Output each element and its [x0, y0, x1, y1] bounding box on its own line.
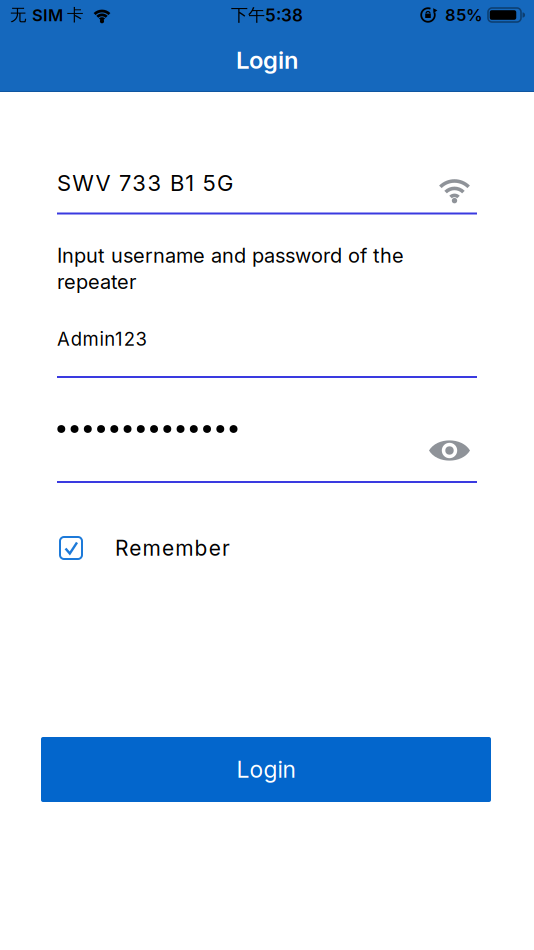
staticText: Login [236, 45, 298, 74]
staticText: 无 SIM 卡 [10, 5, 84, 25]
staticText: 下午5:38 [231, 4, 303, 26]
staticText: Remember [115, 535, 230, 561]
button[interactable]: Admin123 [57, 322, 477, 378]
staticText: 85% [445, 5, 483, 25]
staticText: SWV 733 B1 5G [57, 170, 233, 196]
staticText: Login [236, 756, 295, 783]
button[interactable]: Login [41, 737, 491, 802]
button[interactable]: SWV 733 B1 5G [57, 160, 477, 216]
staticText: Input username and password of the repea… [57, 243, 404, 294]
staticText: Admin123 [57, 328, 147, 350]
button[interactable]: Password, show password [57, 410, 477, 484]
button[interactable]: Remember [57, 532, 250, 564]
